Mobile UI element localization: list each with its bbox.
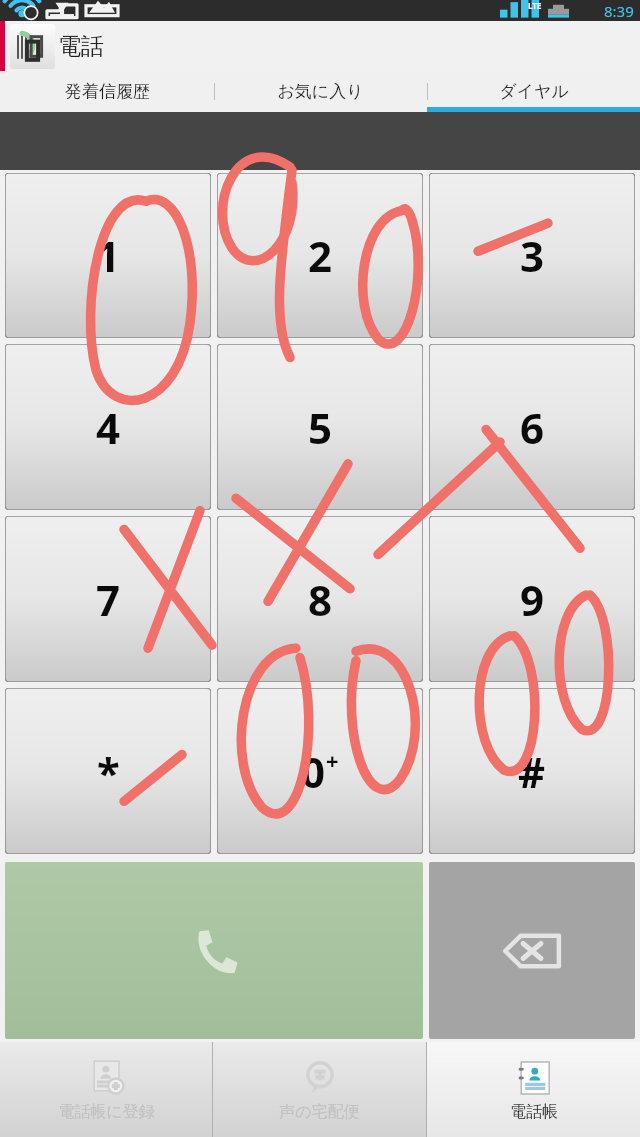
staticText: 2 bbox=[308, 227, 333, 284]
button[interactable]: Call bbox=[5, 862, 423, 1039]
staticText: LTE bbox=[528, 0, 542, 11]
staticText: 声の宅配便 bbox=[279, 1102, 360, 1122]
button[interactable]: 2 bbox=[217, 173, 423, 338]
staticText: 8:39 bbox=[604, 1, 634, 21]
button[interactable]: 1 bbox=[5, 173, 211, 338]
button[interactable]: お気に入り bbox=[214, 71, 427, 112]
button[interactable]: 電話帳に登録 bbox=[0, 1042, 212, 1137]
staticText: 電話帳 bbox=[510, 1102, 558, 1122]
button[interactable]: 3 bbox=[429, 173, 635, 338]
staticText: 4 bbox=[96, 399, 121, 456]
staticText: 9 bbox=[520, 571, 545, 628]
button[interactable]: # bbox=[429, 688, 635, 854]
button[interactable]: Backspace bbox=[429, 862, 635, 1039]
staticText: 発着信履歴 bbox=[65, 81, 150, 102]
staticText: 5 bbox=[308, 399, 333, 456]
button[interactable]: 5 bbox=[217, 344, 423, 510]
button[interactable]: 9 bbox=[429, 516, 635, 682]
button[interactable]: 8 bbox=[217, 516, 423, 682]
button[interactable]: 電話帳 bbox=[427, 1042, 640, 1137]
staticText: + bbox=[326, 745, 339, 775]
staticText: # bbox=[518, 743, 546, 800]
staticText: ダイヤル bbox=[499, 81, 569, 102]
staticText: 3 bbox=[520, 227, 545, 284]
staticText: 0 bbox=[301, 743, 326, 800]
staticText: 1 bbox=[96, 227, 121, 284]
staticText: お気に入り bbox=[277, 81, 364, 102]
staticText: 8 bbox=[308, 571, 333, 628]
button[interactable]: 7 bbox=[5, 516, 211, 682]
staticText: 6 bbox=[520, 399, 545, 456]
staticText: 7 bbox=[96, 571, 121, 628]
staticText: 電話帳に登録 bbox=[58, 1102, 155, 1122]
button[interactable]: ダイヤル bbox=[427, 71, 640, 112]
button[interactable]: 0 bbox=[217, 688, 423, 854]
button[interactable]: 4 bbox=[5, 344, 211, 510]
button[interactable]: * bbox=[5, 688, 211, 854]
button[interactable]: 発着信履歴 bbox=[0, 71, 214, 112]
button[interactable]: 6 bbox=[429, 344, 635, 510]
staticText: * bbox=[97, 743, 120, 800]
button[interactable]: 声の宅配便 bbox=[213, 1042, 426, 1137]
staticText: 電話 bbox=[58, 32, 104, 61]
